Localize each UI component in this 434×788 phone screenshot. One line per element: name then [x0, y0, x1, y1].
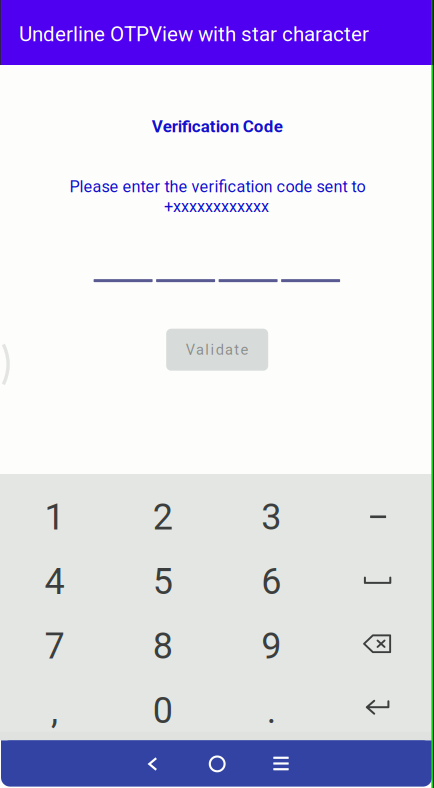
staticText: 2 — [153, 496, 173, 538]
button[interactable]: Space — [325, 549, 434, 614]
staticText: 4 — [44, 561, 64, 603]
staticText: 8 — [153, 625, 173, 667]
button[interactable]: Recents — [258, 743, 304, 783]
button[interactable]: Home — [194, 744, 240, 784]
button[interactable]: 5 — [109, 549, 217, 614]
staticText: 5 — [153, 561, 173, 603]
button[interactable]: Back — [130, 744, 176, 784]
button[interactable]: , — [0, 678, 109, 743]
staticText: Underline OTPView with star character — [19, 22, 369, 46]
button[interactable]: Minus — [325, 485, 434, 549]
staticText: . — [267, 690, 276, 732]
button[interactable]: 9 — [217, 614, 325, 678]
staticText: +xxxxxxxxxxxx — [164, 197, 269, 216]
staticText: 0 — [153, 690, 173, 732]
staticText: 7 — [44, 625, 64, 667]
button[interactable]: 8 — [109, 614, 217, 678]
button[interactable]: 3 — [217, 485, 325, 549]
button[interactable]: 0 — [109, 678, 217, 743]
staticText: , — [51, 690, 58, 732]
staticText: 9 — [261, 625, 281, 667]
button[interactable]: 4 — [0, 549, 109, 614]
staticText: Verification Code — [152, 116, 283, 136]
staticText: 3 — [261, 496, 281, 538]
staticText: 6 — [261, 561, 281, 603]
button[interactable]: 2 — [109, 485, 217, 549]
button[interactable]: . — [217, 678, 325, 743]
staticText: 1 — [44, 496, 64, 538]
button[interactable]: Enter — [325, 678, 434, 743]
button[interactable]: Validate — [166, 329, 268, 371]
button[interactable]: Backspace — [325, 614, 434, 678]
button[interactable]: 7 — [0, 614, 109, 678]
staticText: Please enter the verification code sent … — [69, 177, 365, 196]
button[interactable]: 1 — [0, 485, 109, 549]
button[interactable]: 6 — [217, 549, 325, 614]
staticText: Validate — [186, 341, 249, 358]
